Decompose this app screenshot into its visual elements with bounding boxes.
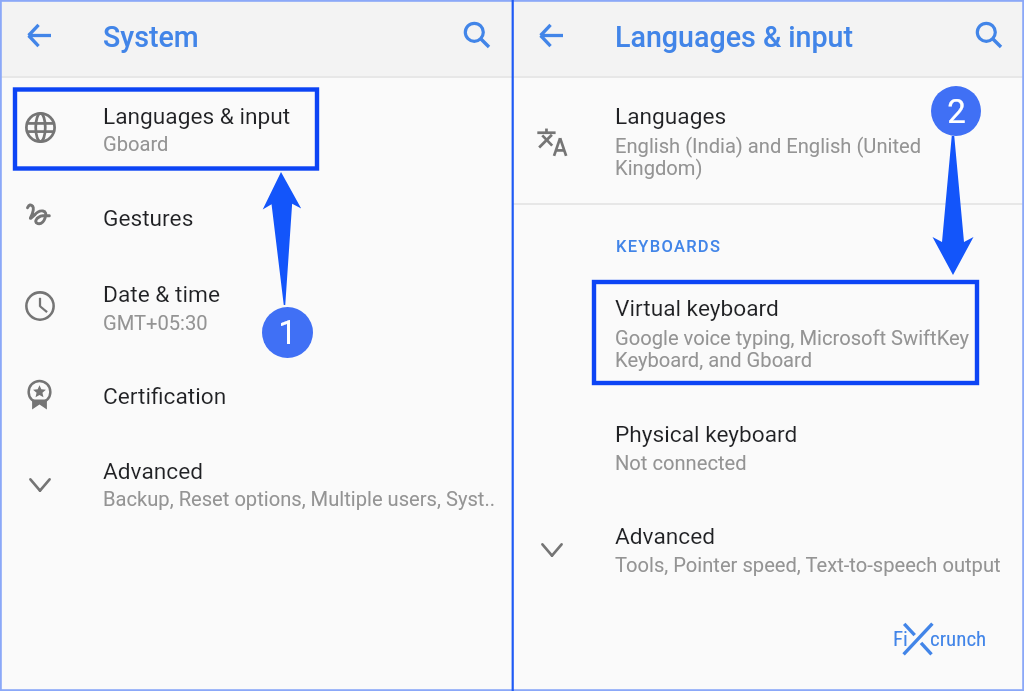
staticText: Advanced [103,458,203,485]
button[interactable]: Advanced [512,510,1024,588]
button[interactable]: Fixcrunch [887,612,1007,664]
button[interactable]: Back [12,12,64,64]
staticText: Languages [615,103,727,130]
staticText: Date & time [103,281,220,308]
staticText: 2 [947,92,966,131]
staticText: crunch [930,627,987,652]
staticText: Gboard [103,132,169,156]
staticText: Not connected [615,451,747,475]
button[interactable]: Physical keyboard [512,410,1024,485]
staticText: Gestures [103,205,194,232]
button[interactable]: Gestures [0,188,512,260]
staticText: Physical keyboard [615,421,798,448]
staticText: Languages & input [615,20,854,54]
button[interactable]: Virtual keyboard [512,285,1024,380]
staticText: Advanced [615,523,715,550]
staticText: Virtual keyboard [615,295,779,322]
staticText: Backup, Reset options, Multiple users, S… [103,487,503,511]
staticText: Languages & input [103,103,291,130]
staticText: GMT+05:30 [103,311,208,335]
staticText: 1 [278,313,297,352]
staticText: Fi [893,627,908,652]
button[interactable]: Languages & input [0,87,512,170]
staticText: KEYBOARDS [616,237,722,256]
button[interactable]: Date & time [0,266,512,349]
button[interactable]: Back [524,12,576,64]
button[interactable]: Certification [0,368,512,440]
button[interactable]: Search [448,10,504,66]
button[interactable]: Languages [512,85,1024,200]
staticText: Tools, Pointer speed, Text-to-speech out… [615,553,1015,577]
staticText: System [103,20,199,54]
staticText: Certification [103,383,227,410]
staticText: English (India) and English (United King… [615,134,927,179]
button[interactable]: Search [960,10,1016,66]
button[interactable]: Advanced [0,444,512,527]
staticText: Google voice typing, Microsoft SwiftKey … [615,326,987,371]
